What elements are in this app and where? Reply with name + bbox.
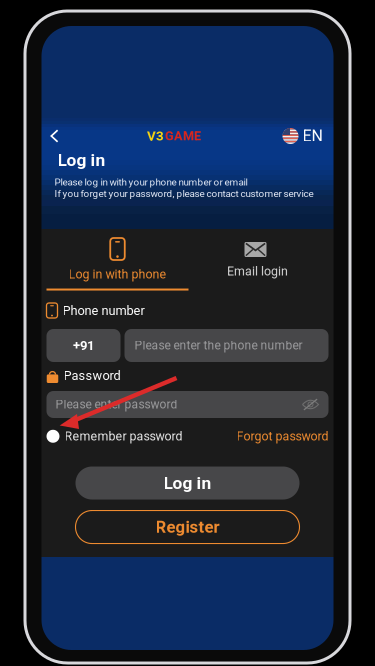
staticText: Register [155, 517, 219, 537]
staticText: Phone number [62, 303, 144, 318]
staticText: Please log in with your phone number or … [54, 176, 247, 188]
button[interactable]: Forgot password [236, 429, 328, 443]
button[interactable]: Remember password [46, 429, 182, 443]
staticText: If you forget your password, please cont… [54, 188, 313, 199]
staticText: EN [302, 127, 322, 145]
staticText: Email login [227, 264, 288, 278]
button[interactable]: Language: English [282, 126, 322, 146]
button[interactable]: +91 [46, 329, 120, 362]
staticText: Please enter password [55, 397, 177, 412]
staticText: Please enter the phone number [134, 338, 302, 353]
staticText: Log in [57, 150, 105, 170]
button[interactable]: Log in with phone [47, 229, 187, 291]
button[interactable]: Register [75, 510, 299, 543]
staticText: Password [63, 368, 120, 383]
staticText: Remember password [64, 429, 182, 443]
staticText: +91 [73, 338, 94, 353]
staticText: Log in [163, 473, 211, 493]
staticText: Forgot password [236, 429, 328, 443]
staticText: Log in with phone [68, 267, 166, 281]
button[interactable]: Please enter password [46, 391, 328, 418]
button[interactable]: Log in [75, 466, 299, 499]
button[interactable]: Back [43, 126, 65, 146]
button[interactable]: Please enter the phone number [124, 329, 328, 362]
button[interactable]: Email login [187, 229, 327, 291]
staticText: V3 [147, 128, 164, 144]
staticText: GAME [165, 129, 201, 143]
